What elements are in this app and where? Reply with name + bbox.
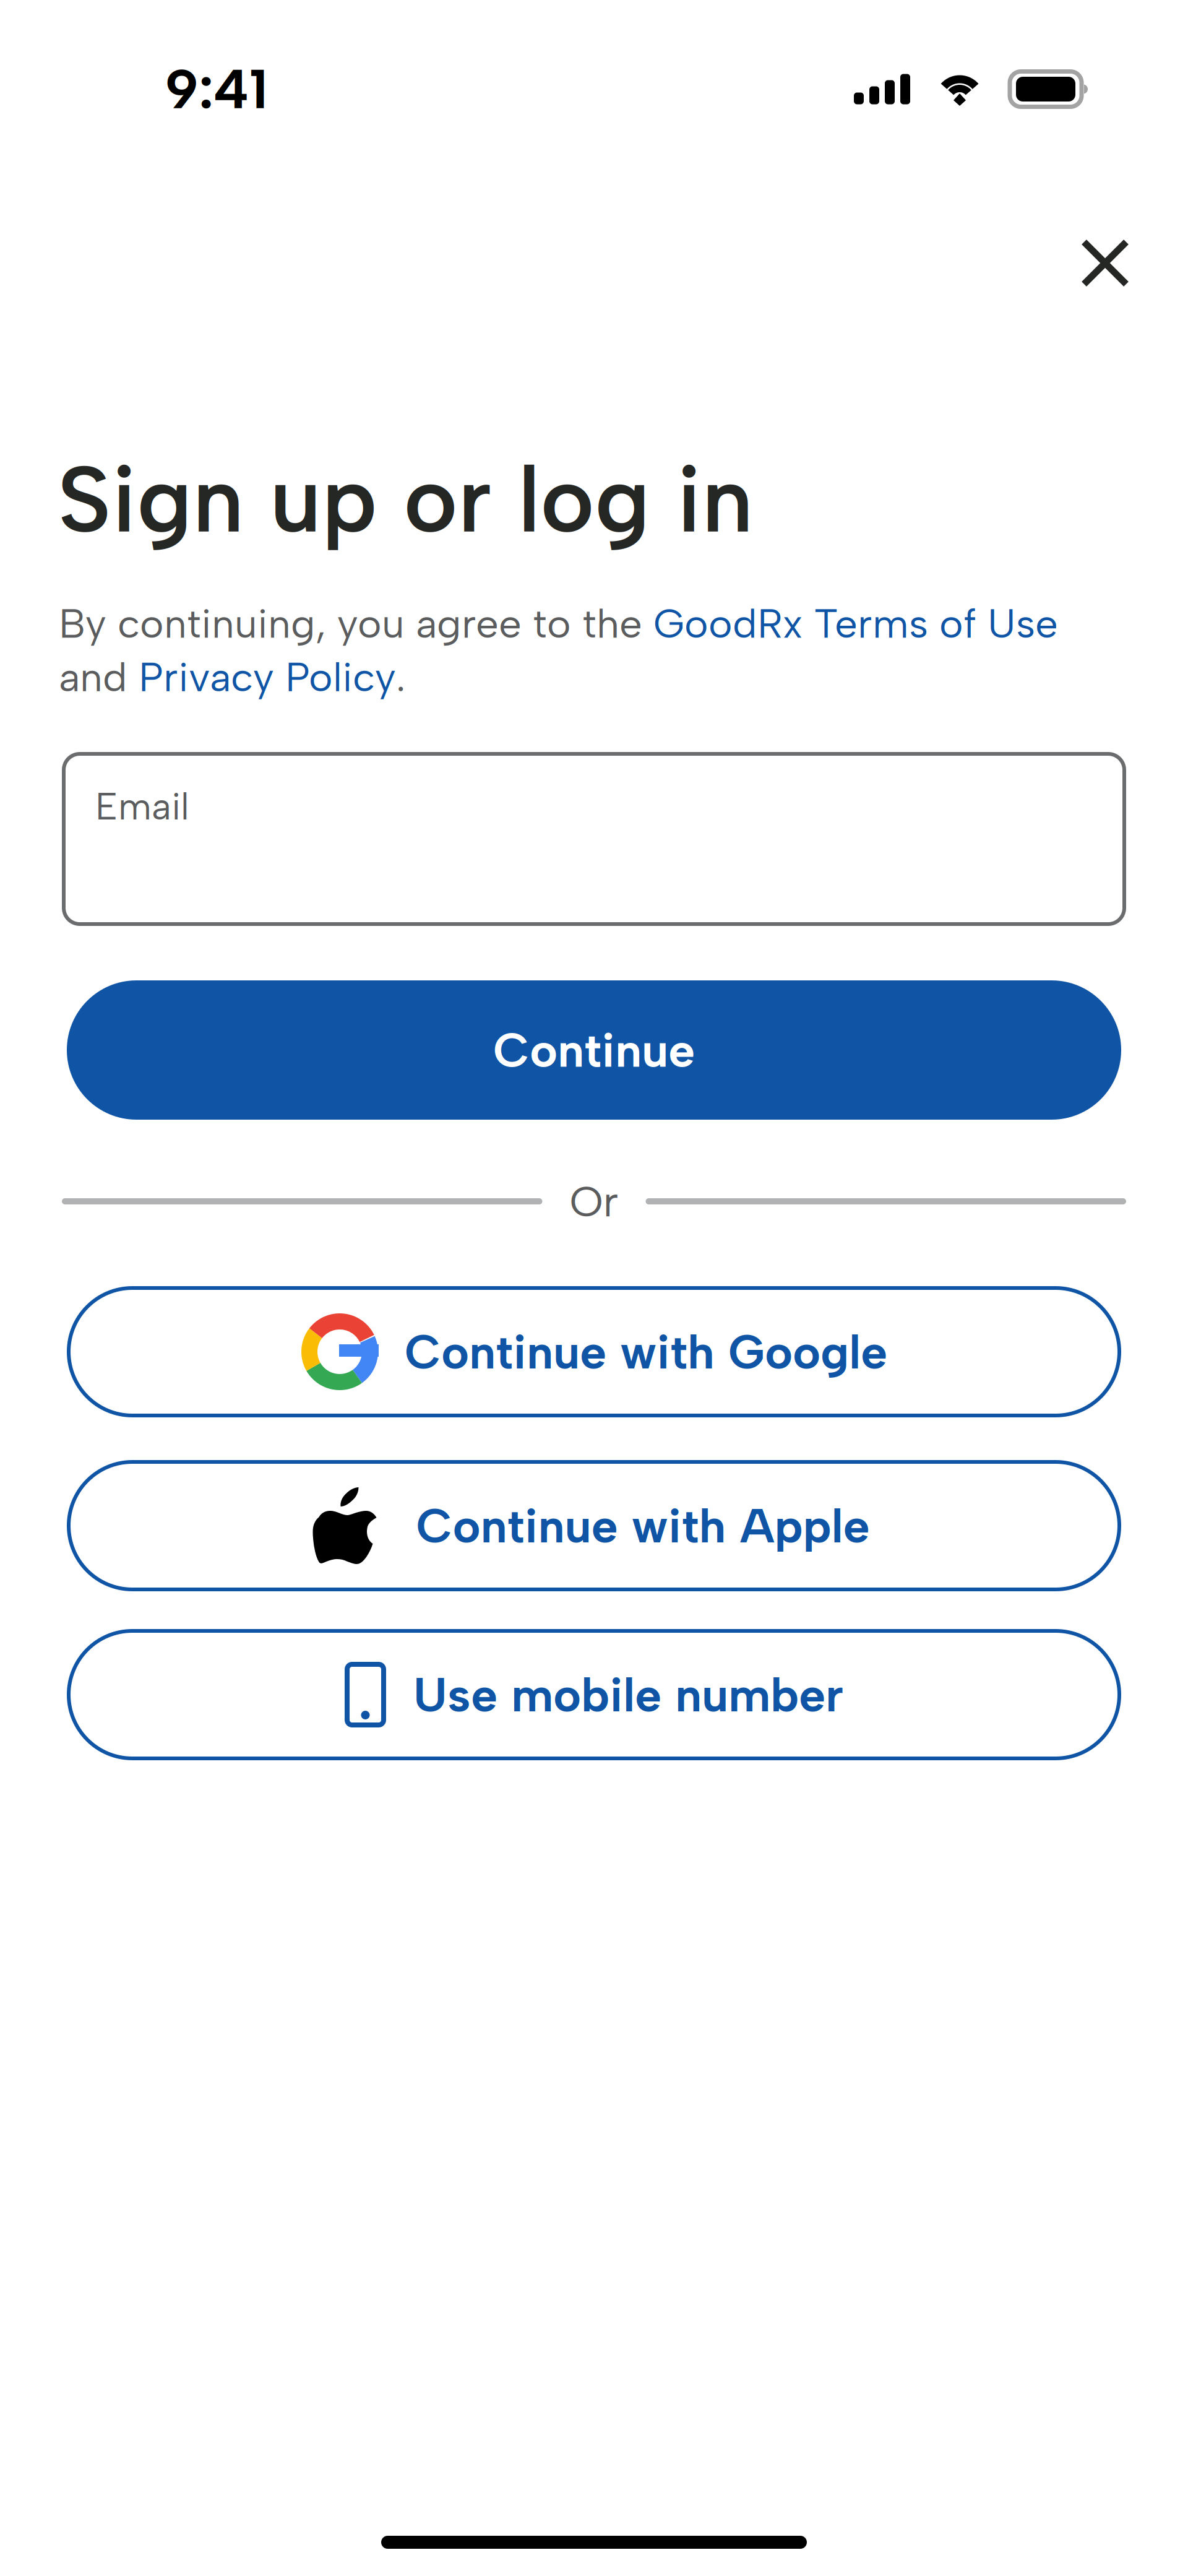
staticText: . xyxy=(396,653,405,701)
button[interactable]: GoodRx Terms of Use xyxy=(653,599,1058,648)
button[interactable]: Use mobile number xyxy=(62,1629,1126,1760)
staticText: and xyxy=(59,653,139,701)
button[interactable]: Close xyxy=(1059,217,1151,309)
staticText: Sign up or log in xyxy=(58,444,753,555)
staticText: Continue with Apple xyxy=(416,1497,870,1554)
staticText: Privacy Policy xyxy=(139,653,396,701)
button[interactable]: Email xyxy=(62,752,1126,926)
staticText: Continue with Google xyxy=(405,1323,887,1380)
button[interactable]: Continue with Apple xyxy=(62,1460,1126,1591)
staticText: By continuing, you agree to the xyxy=(59,599,653,648)
button[interactable]: Privacy Policy xyxy=(139,653,396,701)
staticText: Use mobile number xyxy=(413,1666,843,1723)
staticText: Or xyxy=(570,1176,618,1227)
staticText: Email xyxy=(95,784,189,829)
staticText: 9:41 xyxy=(165,56,267,122)
staticText: Continue xyxy=(493,1021,695,1079)
staticText: GoodRx Terms of Use xyxy=(653,599,1058,648)
button[interactable]: Continue with Google xyxy=(62,1286,1126,1417)
button[interactable]: Continue xyxy=(62,980,1126,1120)
